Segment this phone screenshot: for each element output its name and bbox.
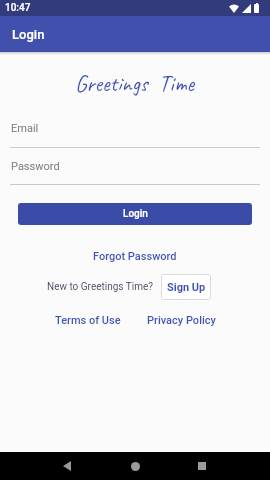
button[interactable] xyxy=(180,452,224,480)
staticText: 10:47 xyxy=(5,2,31,14)
button[interactable] xyxy=(45,452,89,480)
staticText: Email xyxy=(11,122,39,135)
staticText: Password xyxy=(11,160,60,173)
staticText: Sign Up xyxy=(167,281,206,294)
staticText: Login xyxy=(123,208,148,220)
staticText: Terms of Use xyxy=(55,314,121,327)
staticText: Privacy Policy xyxy=(147,314,216,327)
staticText: Greetings Time xyxy=(75,69,195,98)
button[interactable]: Terms of Use xyxy=(55,314,121,327)
button[interactable]: Login xyxy=(18,203,252,225)
button[interactable]: Forgot Password xyxy=(93,250,177,263)
button[interactable]: Privacy Policy xyxy=(147,314,216,327)
button[interactable]: Sign Up xyxy=(161,274,211,300)
staticText: Login xyxy=(12,27,45,42)
staticText: Forgot Password xyxy=(93,250,177,263)
staticText: New to Greetings Time? xyxy=(47,281,153,293)
button[interactable] xyxy=(113,452,157,480)
